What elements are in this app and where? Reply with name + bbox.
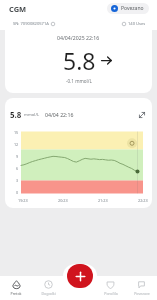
staticText: 15 [14, 130, 19, 135]
staticText: 19:23 [18, 198, 28, 203]
button[interactable]: Povezano [107, 3, 149, 14]
button[interactable]: Dogodki [32, 276, 64, 300]
staticText: SN: 70900820571A [13, 21, 49, 27]
staticText: -0.1 mmol/L [66, 78, 92, 84]
button[interactable]: Add entry [67, 264, 93, 288]
button[interactable]: Poročila [95, 276, 126, 300]
staticText: 140 Uses [128, 21, 146, 27]
staticText: Dogodki [41, 291, 56, 296]
staticText: 5.8 [10, 109, 22, 120]
staticText: Pretok [10, 291, 22, 296]
button[interactable]: Povezave [126, 276, 157, 300]
staticText: 6 [16, 166, 19, 171]
staticText: Poročila [104, 291, 118, 296]
staticText: 04/04/2025 22:16 [57, 34, 100, 41]
staticText: 0 [16, 190, 19, 195]
staticText: Povezano [121, 5, 144, 12]
staticText: 20:23 [58, 198, 68, 203]
button[interactable]: Expand chart [136, 109, 148, 121]
staticText: mmol/L [24, 112, 40, 118]
staticText: CGM [9, 4, 27, 14]
staticText: 22:23 [138, 198, 148, 203]
button[interactable]: Pretok [0, 276, 32, 300]
staticText: 9 [16, 154, 19, 159]
staticText: Povezave [134, 291, 150, 296]
staticText: 5.8 [63, 45, 96, 76]
staticText: 04/04 22:16 [45, 111, 74, 118]
staticText: 12 [14, 142, 19, 147]
staticText: 3 [16, 178, 19, 183]
staticText: 21:23 [98, 198, 108, 203]
